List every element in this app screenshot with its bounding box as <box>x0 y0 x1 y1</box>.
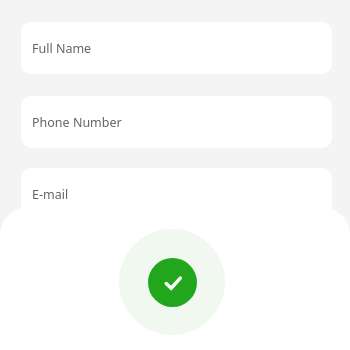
button[interactable]: Full Name <box>21 22 332 74</box>
staticText: Phone Number <box>32 114 122 131</box>
button[interactable]: Phone Number <box>21 96 332 148</box>
button[interactable]: Confirm <box>119 229 225 335</box>
button[interactable]: E-mail <box>21 168 332 220</box>
staticText: E-mail <box>32 186 69 203</box>
staticText: Full Name <box>32 40 92 57</box>
